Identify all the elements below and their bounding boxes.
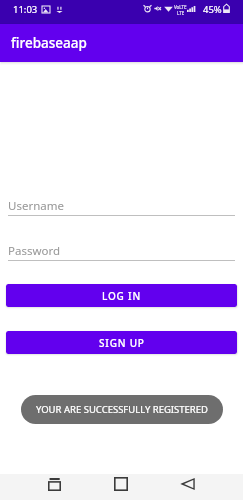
button[interactable]: Password xyxy=(8,243,235,261)
button[interactable]: Username xyxy=(8,198,235,216)
button[interactable]: LOG IN xyxy=(6,284,237,307)
staticText: firebaseaap xyxy=(11,34,87,52)
button[interactable]: Home xyxy=(102,471,140,497)
staticText: VoLTE xyxy=(174,4,187,10)
button[interactable]: SIGN UP xyxy=(6,331,237,354)
staticText: SIGN UP xyxy=(99,336,145,350)
button[interactable]: Back xyxy=(169,471,207,497)
staticText: LTE xyxy=(177,10,185,16)
staticText: 45% xyxy=(203,3,222,16)
button[interactable]: Recent apps xyxy=(35,471,73,497)
staticText: LOG IN xyxy=(102,289,141,303)
staticText: Username xyxy=(8,198,64,214)
staticText: YOUR ARE SUCCESSFULLY REGISTERED xyxy=(36,403,208,416)
staticText: 11:03 xyxy=(13,3,38,16)
staticText: Password xyxy=(8,243,61,259)
